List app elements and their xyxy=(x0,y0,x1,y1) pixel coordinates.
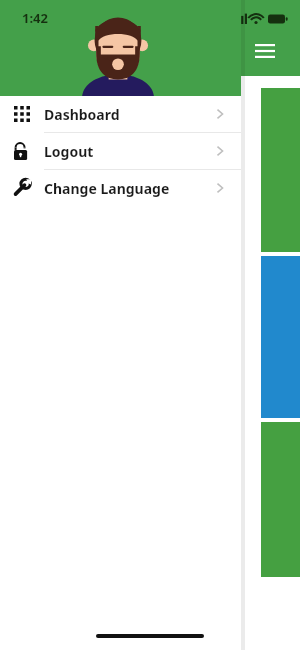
staticText: Logout xyxy=(44,142,94,161)
staticText: Dashboard xyxy=(44,105,120,124)
button[interactable]: Change Language xyxy=(0,170,241,206)
staticText: Change Language xyxy=(44,179,170,198)
button[interactable]: Dashboard xyxy=(0,96,241,132)
button[interactable]: Logout xyxy=(0,133,241,169)
staticText: 1:42 xyxy=(22,9,48,27)
button[interactable]: Open navigation menu xyxy=(248,36,282,66)
